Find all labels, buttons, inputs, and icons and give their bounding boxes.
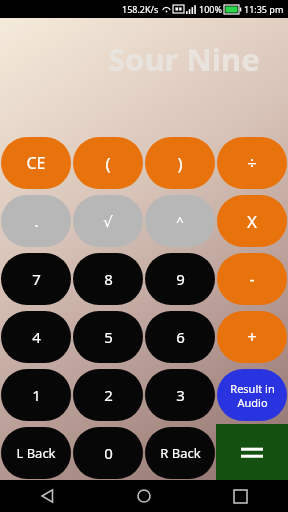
staticText: Result in Audio [230, 381, 275, 410]
button[interactable]: 3 [145, 369, 215, 421]
staticText: L Back [16, 444, 56, 462]
button[interactable]: 1 [1, 369, 71, 421]
button[interactable]: Recent apps [192, 480, 288, 512]
button[interactable]: 9 [145, 253, 215, 305]
button[interactable]: . [1, 195, 71, 247]
button[interactable]: 2 [73, 369, 143, 421]
staticText: ( [105, 152, 111, 175]
button[interactable]: ) [145, 137, 215, 189]
staticText: 9 [176, 269, 185, 289]
staticText: 158.2K/s [122, 3, 159, 15]
button[interactable]: Back [0, 480, 96, 512]
staticText: CE [26, 152, 46, 174]
staticText: + [247, 326, 257, 348]
button[interactable]: R Back [145, 427, 215, 479]
staticText: . [34, 211, 39, 231]
staticText: R Back [160, 444, 201, 462]
staticText: 5 [104, 327, 113, 347]
button[interactable]: Result in Audio [217, 369, 287, 421]
button[interactable]: 7 [1, 253, 71, 305]
button[interactable]: Home [96, 480, 192, 512]
staticText: ) [177, 152, 183, 175]
button[interactable]: 4 [1, 311, 71, 363]
button[interactable]: ^ [145, 195, 215, 247]
staticText: 3 [176, 385, 185, 405]
button[interactable]: 8 [73, 253, 143, 305]
staticText: 6 [176, 327, 185, 347]
button[interactable]: X [217, 195, 287, 247]
staticText: 4 [32, 327, 41, 347]
button[interactable]: ( [73, 137, 143, 189]
staticText: 11:35 pm [244, 3, 284, 15]
button[interactable]: 0 [73, 427, 143, 479]
staticText: - [249, 268, 255, 290]
button[interactable]: Equals [216, 424, 288, 482]
staticText: ÷ [247, 152, 257, 174]
button[interactable]: CE [1, 137, 71, 189]
button[interactable]: 6 [145, 311, 215, 363]
button[interactable]: √ [73, 195, 143, 247]
staticText: 1 [32, 385, 41, 405]
staticText: 7 [32, 269, 41, 289]
staticText: 2 [104, 385, 113, 405]
button[interactable]: - [217, 253, 287, 305]
button[interactable]: + [217, 311, 287, 363]
button[interactable]: 5 [73, 311, 143, 363]
staticText: 8 [104, 269, 113, 289]
staticText: 100% [199, 3, 222, 15]
staticText: X [247, 210, 257, 233]
staticText: 0 [104, 443, 113, 463]
button[interactable]: ÷ [217, 137, 287, 189]
staticText: ^ [176, 212, 184, 230]
staticText: √ [103, 213, 113, 230]
button[interactable]: L Back [1, 427, 71, 479]
staticText: Sour Nine [108, 38, 260, 80]
